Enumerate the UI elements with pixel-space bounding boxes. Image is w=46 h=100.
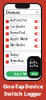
staticText: When worn — [10, 41, 18, 43]
staticText: Mac Studio — [10, 43, 25, 47]
staticText: › — [38, 54, 39, 57]
button[interactable]: HomePod — [4, 31, 41, 37]
staticText: Home Wi-Fi — [10, 35, 16, 37]
button[interactable]: AirPods Pro — [4, 19, 41, 24]
button[interactable]: Car Audio — [4, 25, 41, 31]
staticText: Yesterday — [10, 59, 23, 63]
staticText: Today — [10, 53, 18, 57]
staticText: Handoff — [10, 47, 16, 49]
staticText: Switch Logger — [4, 90, 42, 97]
button[interactable]: Yesterday — [4, 59, 41, 65]
staticText: AUTO-SWITCH — [6, 16, 15, 18]
button[interactable]: Apple Watch — [4, 37, 41, 43]
staticText: Log a Switch — [14, 72, 31, 76]
staticText: Log — [32, 72, 37, 75]
button[interactable]: Log a Switch — [6, 71, 39, 77]
staticText: Switch to — [29, 59, 34, 60]
staticText: 12 switches — [10, 57, 18, 58]
staticText: AirPods Pro — [10, 19, 27, 22]
staticText: On CarPlay — [10, 29, 18, 30]
staticText: Devices — [6, 10, 20, 15]
staticText: One-Tap Device — [3, 83, 43, 90]
staticText: Auto connect — [10, 22, 19, 24]
staticText: Car Audio — [10, 25, 25, 28]
button[interactable]: Today — [4, 53, 41, 59]
button[interactable]: Mac Studio — [4, 43, 41, 49]
staticText: HomePod — [10, 31, 25, 35]
staticText: Apple Watch — [10, 37, 28, 41]
staticText: 8 switches — [10, 63, 17, 65]
staticText: + — [36, 10, 38, 14]
staticText: AirPods Pro — [29, 61, 38, 68]
staticText: › — [38, 60, 39, 64]
staticText: Left ear · 80% — [29, 69, 37, 70]
button[interactable]: Log — [29, 71, 39, 76]
button[interactable]: Add device — [36, 11, 39, 14]
staticText: RECENT — [6, 51, 12, 52]
